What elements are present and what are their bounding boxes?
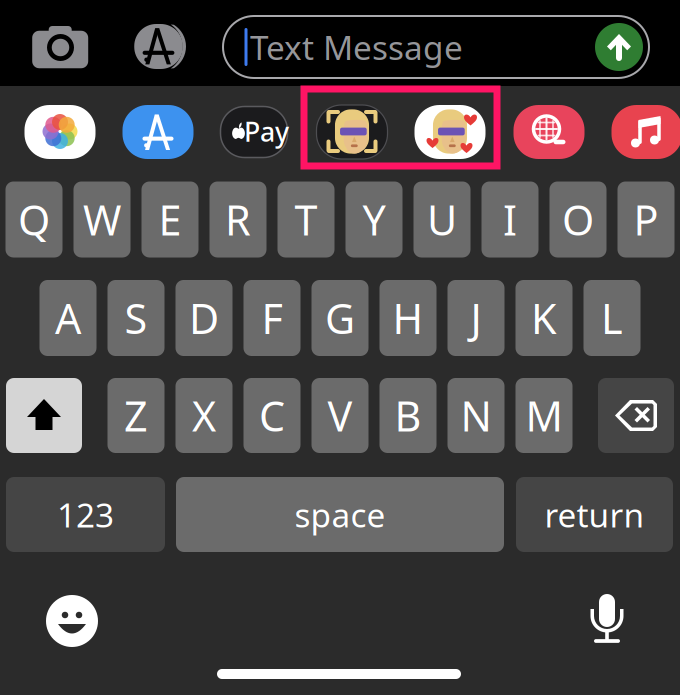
staticText: T [294,192,317,247]
staticText: F [261,291,282,345]
staticText: H [392,291,423,345]
button[interactable]: Q [5,181,62,257]
staticText: U [427,192,457,247]
button[interactable]: O [549,181,606,257]
staticText: C [259,388,285,443]
staticText: D [189,291,219,345]
button[interactable]: D [175,280,232,356]
button[interactable]: H [379,280,436,356]
staticText: Text Message [250,25,463,69]
button[interactable]: E [141,181,198,257]
button[interactable]: V [311,378,368,453]
button[interactable]: Delete [598,378,674,453]
button[interactable]: Y [345,181,402,257]
button[interactable]: Apple Pay [220,106,287,157]
button[interactable]: Images [513,105,584,159]
staticText: Pay [244,114,289,149]
staticText: A [55,291,81,345]
button[interactable]: B [379,378,436,453]
button[interactable]: K [515,280,572,356]
staticText: W [83,192,121,247]
staticText: M [525,388,562,443]
button[interactable]: W [73,181,130,257]
staticText: R [225,192,251,247]
button[interactable]: I [481,181,538,257]
staticText: X [192,388,216,443]
button[interactable]: M [515,378,572,453]
button[interactable]: S [107,280,164,356]
staticText: 123 [57,492,114,537]
button[interactable]: U [413,181,470,257]
button[interactable]: Z [107,378,164,453]
staticText: S [124,291,147,345]
button[interactable]: Camera [24,16,94,76]
staticText: B [394,388,421,443]
staticText: V [327,388,352,443]
staticText: Q [18,192,50,247]
button[interactable]: G [311,280,368,356]
staticText: G [325,291,355,345]
button[interactable]: Text Message [223,16,649,78]
button[interactable]: Music [611,105,680,159]
staticText: I [503,192,517,247]
button[interactable]: R [209,181,266,257]
button[interactable]: Dictate [583,590,631,650]
button[interactable]: return [516,477,673,552]
staticText: Y [362,192,385,247]
button[interactable]: A [39,280,96,356]
button[interactable]: Memoji [414,105,485,159]
button[interactable]: 123 [6,477,165,552]
button[interactable]: X [175,378,232,453]
staticText: space [294,492,385,537]
button[interactable]: Shift [6,378,82,453]
button[interactable]: N [447,378,504,453]
staticText: L [601,291,623,345]
staticText: N [460,388,491,443]
button[interactable]: App Store [123,16,193,76]
button[interactable]: Emoji [46,595,98,647]
button[interactable]: Memoji Stickers [316,105,387,159]
staticText: K [531,291,557,345]
button[interactable]: App Store [122,105,193,159]
staticText: P [633,192,658,247]
button[interactable]: J [447,280,504,356]
staticText: J [470,291,481,345]
staticText: return [544,492,644,537]
staticText: E [158,192,181,247]
staticText: Z [124,388,148,443]
staticText: O [562,192,594,247]
button[interactable]: C [243,378,300,453]
button[interactable]: L [583,280,640,356]
button[interactable]: space [176,477,504,552]
button[interactable]: T [277,181,334,257]
button[interactable]: P [617,181,674,257]
button[interactable]: Photos [24,105,95,159]
button[interactable]: Send [593,21,645,73]
button[interactable]: F [243,280,300,356]
